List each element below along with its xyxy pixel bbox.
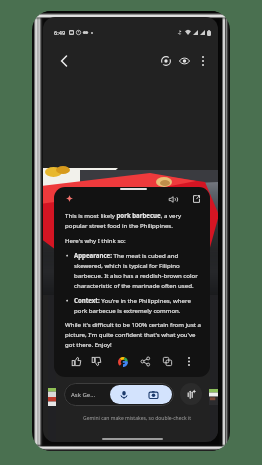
button[interactable]: More [180, 353, 197, 370]
staticText: Appearance: The meat is cubed and skewer… [74, 251, 204, 289]
staticText: Ask Ge... [71, 391, 96, 399]
staticText: Gemini can make mistakes, so double-chec… [51, 415, 218, 422]
button[interactable]: Ask Ge... [64, 383, 174, 406]
button[interactable]: Read aloud [165, 191, 181, 207]
button[interactable]: Gemini Live [180, 383, 202, 405]
button[interactable]: Search with camera [144, 385, 163, 404]
button[interactable]: Search with Google [114, 353, 131, 370]
button[interactable]: Google Lens [156, 51, 175, 70]
button[interactable]: Good response [68, 353, 85, 370]
staticText: While it's difficult to be 100% certain … [65, 320, 204, 348]
staticText: 6:49 [54, 29, 66, 37]
button[interactable]: Share [137, 353, 154, 370]
button[interactable]: Show preview [175, 51, 194, 70]
button[interactable]: Back [54, 51, 74, 71]
button[interactable]: Voice search [114, 385, 133, 404]
staticText: This is most likely pork barbecue, a ver… [65, 211, 204, 229]
staticText: Here's why I think so: [65, 236, 126, 244]
button[interactable]: Open in new window [188, 191, 204, 207]
button[interactable]: More options [193, 51, 212, 70]
staticText: Context: You're in the Philippines, wher… [74, 296, 204, 314]
button[interactable]: Bad response [88, 353, 105, 370]
staticText: • [66, 296, 69, 304]
staticText: • [66, 251, 69, 259]
button[interactable]: Copy [159, 353, 176, 370]
